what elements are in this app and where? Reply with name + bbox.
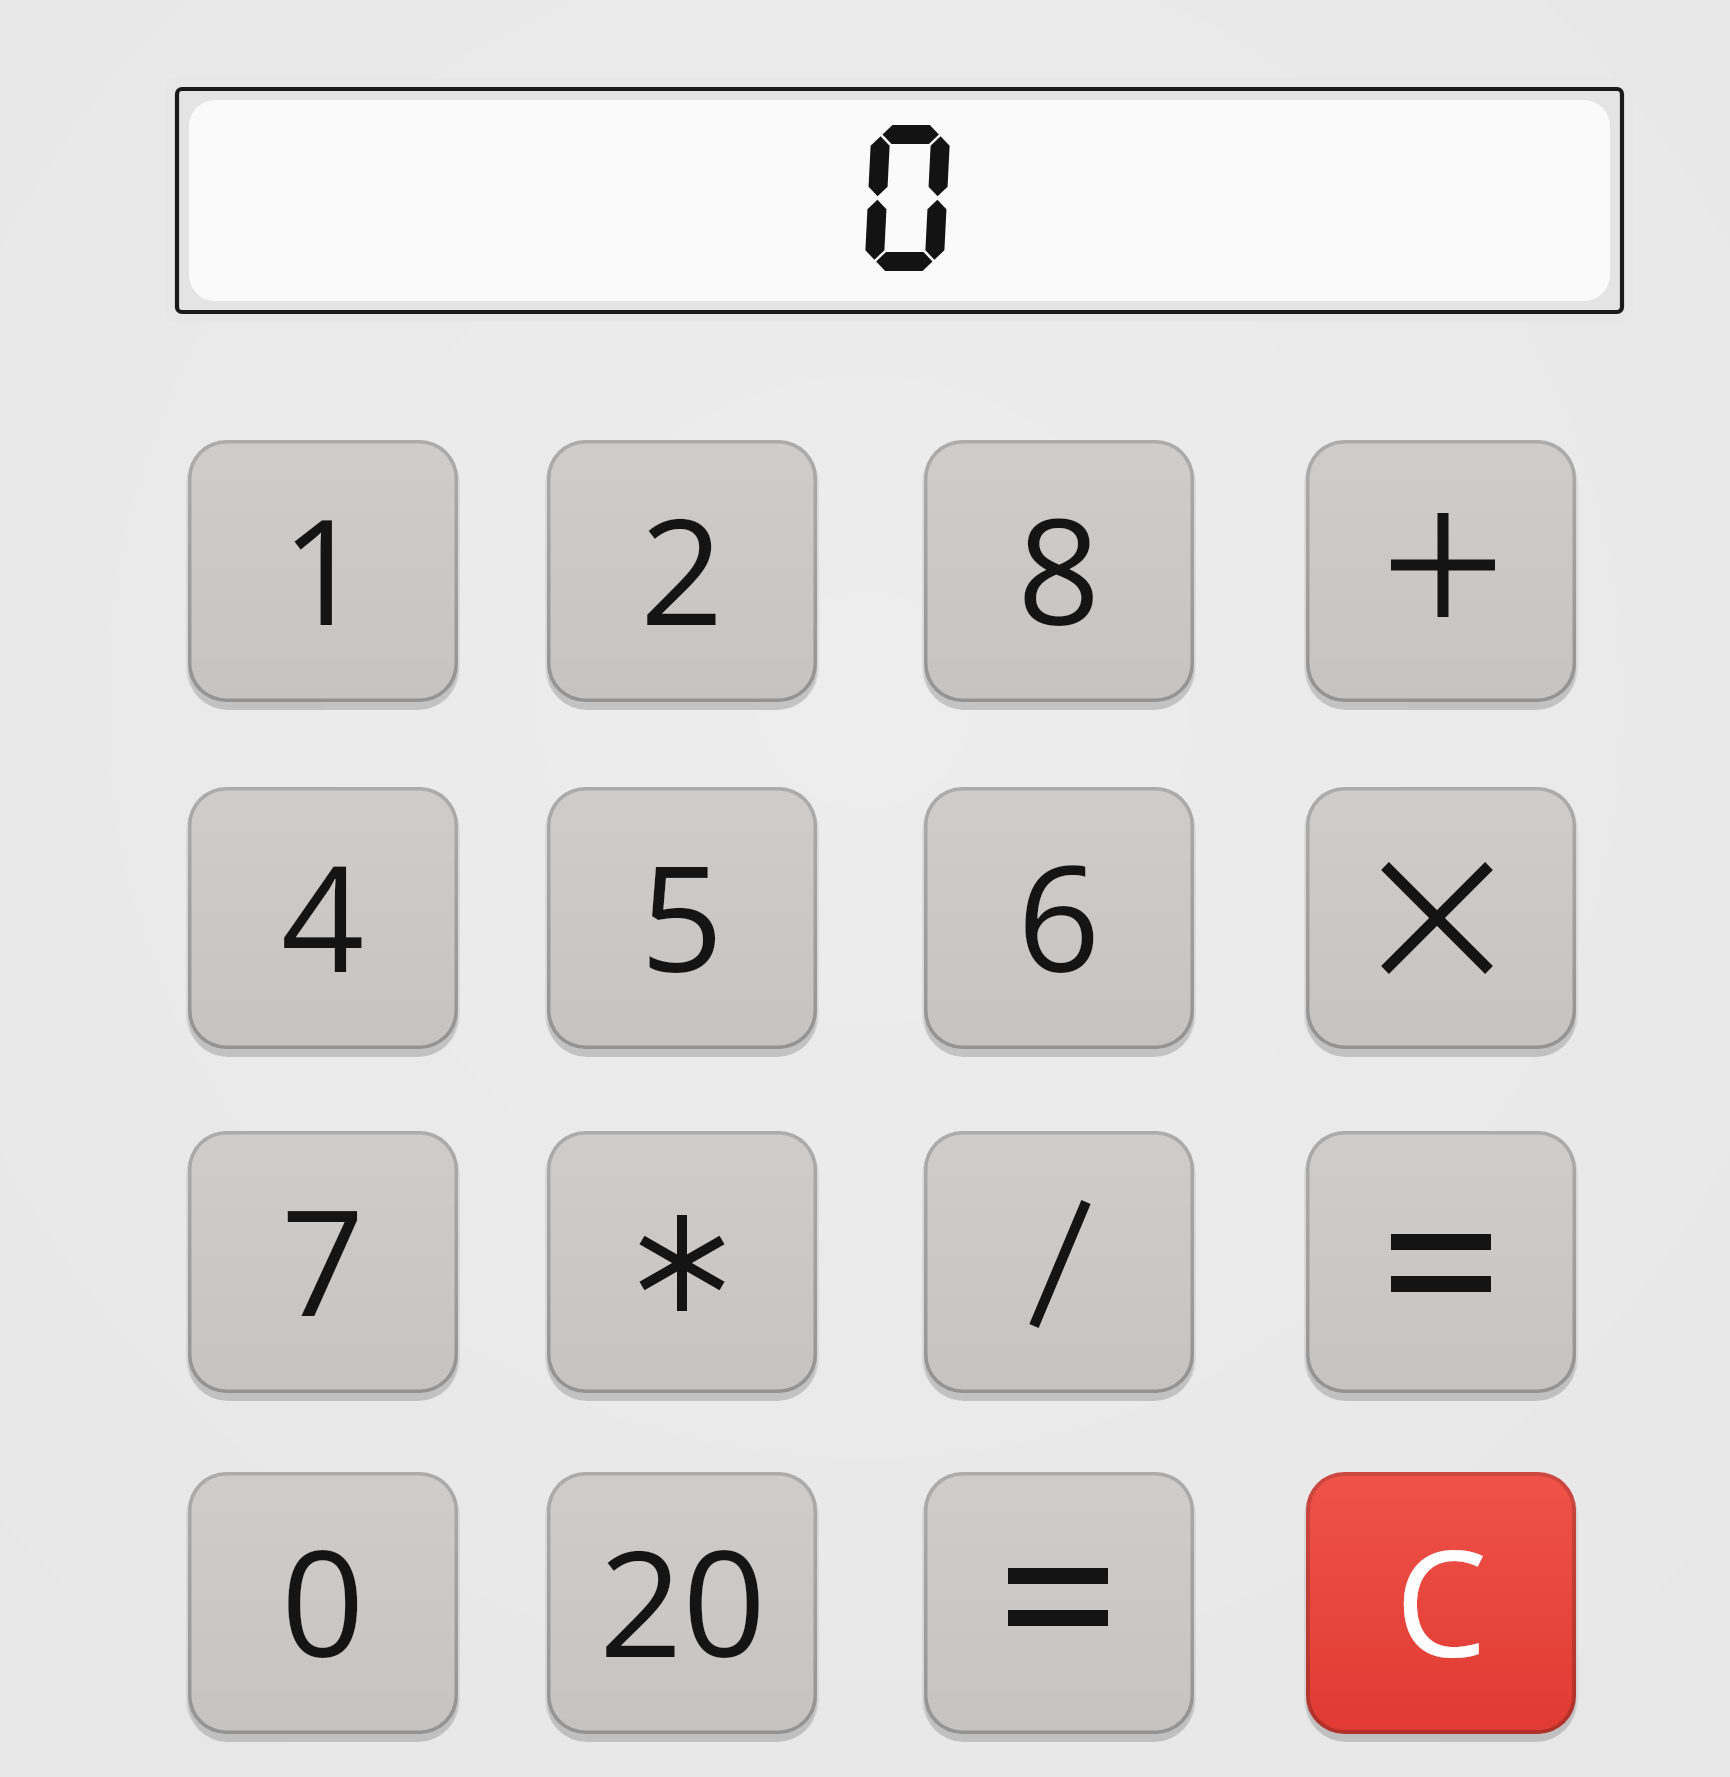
button[interactable]: C: [1306, 1472, 1576, 1734]
staticText: 4: [281, 816, 365, 1015]
button[interactable]: [1306, 1131, 1576, 1393]
button[interactable]: 6: [924, 787, 1194, 1049]
button[interactable]: [924, 1131, 1194, 1393]
button[interactable]: 1: [188, 440, 458, 702]
button[interactable]: 0: [188, 1472, 458, 1734]
staticText: 0: [281, 1501, 365, 1700]
button[interactable]: 8: [924, 440, 1194, 702]
button[interactable]: 7: [188, 1131, 458, 1393]
button[interactable]: [1306, 787, 1576, 1049]
staticText: C: [1395, 1501, 1488, 1700]
staticText: 8: [1017, 469, 1101, 668]
staticText: 5: [640, 816, 724, 1015]
button[interactable]: [1306, 440, 1576, 702]
staticText: 1: [281, 469, 365, 668]
staticText: 6: [1017, 816, 1101, 1015]
button[interactable]: 5: [547, 787, 817, 1049]
button[interactable]: [924, 1472, 1194, 1734]
staticText: 2: [640, 469, 724, 668]
button[interactable]: 4: [188, 787, 458, 1049]
staticText: 7: [281, 1160, 365, 1359]
button[interactable]: 20: [547, 1472, 817, 1734]
staticText: 20: [599, 1501, 766, 1700]
button[interactable]: [547, 1131, 817, 1393]
button[interactable]: 2: [547, 440, 817, 702]
